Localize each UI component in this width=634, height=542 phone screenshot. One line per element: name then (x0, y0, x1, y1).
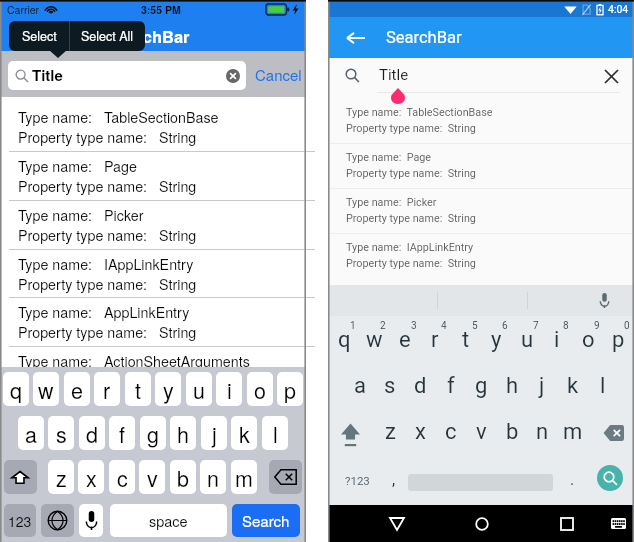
button[interactable]: h (497, 370, 527, 402)
button[interactable]: o (247, 372, 273, 406)
staticText: Type name: AppLinkEntry Property type na… (18, 302, 197, 342)
button[interactable]: d (79, 416, 105, 450)
staticText: e (71, 374, 83, 405)
button[interactable] (408, 462, 553, 500)
button[interactable]: , (380, 462, 408, 500)
button[interactable]: 9 (573, 323, 603, 355)
button[interactable]: y (155, 372, 181, 406)
button[interactable]: 123 (4, 504, 36, 537)
button[interactable]: Voice input (592, 285, 616, 316)
button[interactable]: Type name: Picker Property type name: St… (0, 200, 306, 249)
button[interactable]: 5 (451, 323, 481, 355)
button[interactable]: l (262, 416, 288, 450)
button[interactable]: f (436, 370, 466, 402)
button[interactable]: Type name: IAppLinkEntry Property type n… (0, 249, 306, 298)
button[interactable]: 4 (420, 323, 450, 355)
button[interactable]: v (139, 460, 165, 494)
staticText: t (135, 374, 141, 405)
button[interactable]: Recent apps (538, 505, 595, 542)
button[interactable]: j (201, 416, 227, 450)
staticText: x (86, 462, 97, 493)
button[interactable]: Select (9, 21, 69, 51)
staticText: Type name: Picker Property type name: St… (18, 205, 197, 245)
button[interactable]: h (170, 416, 196, 450)
button[interactable]: z (375, 416, 405, 448)
button[interactable]: 8 (542, 323, 572, 355)
staticText: Select All (81, 27, 134, 45)
button[interactable]: Select All (70, 21, 145, 51)
button[interactable]: 6 (481, 323, 511, 355)
button[interactable]: 7 (512, 323, 542, 355)
staticText: r (103, 374, 111, 405)
button[interactable]: g (140, 416, 166, 450)
button[interactable]: Type name: ActionSheetArguments Property… (0, 346, 306, 367)
button[interactable]: n (527, 416, 557, 448)
button[interactable]: Clear text (225, 68, 241, 84)
button[interactable]: Search (232, 504, 300, 537)
button[interactable]: Backspace (596, 416, 632, 456)
button[interactable]: u (186, 372, 212, 406)
staticText: h (177, 418, 189, 449)
button[interactable]: l (588, 370, 618, 402)
button[interactable]: Type name: TableSectionBase Property typ… (328, 98, 634, 143)
button[interactable]: Type name: IAppLinkEntry Property type n… (328, 233, 634, 278)
button[interactable]: Type name: Picker Property type name: St… (328, 188, 634, 233)
button[interactable]: k (558, 370, 588, 402)
button[interactable]: m (231, 460, 257, 494)
button[interactable]: n (200, 460, 226, 494)
button[interactable]: m (558, 416, 588, 448)
button[interactable]: Switch keyboard (596, 505, 634, 542)
button[interactable]: w (33, 372, 59, 406)
button[interactable]: Shift (332, 416, 368, 456)
button[interactable]: 2 (359, 323, 389, 355)
button[interactable]: x (405, 416, 435, 448)
button[interactable]: 3 (390, 323, 420, 355)
button[interactable]: v (466, 416, 496, 448)
button[interactable]: x (78, 460, 104, 494)
button[interactable]: c (436, 416, 466, 448)
staticText: m (235, 462, 253, 493)
button[interactable]: e (64, 372, 90, 406)
button[interactable]: Clear text (599, 64, 623, 88)
button[interactable]: Change keyboard (41, 504, 74, 537)
button[interactable]: Type name: AppLinkEntry Property type na… (0, 297, 306, 346)
button[interactable]: a (345, 370, 375, 402)
button[interactable]: s (375, 370, 405, 402)
button[interactable]: s (48, 416, 74, 450)
button[interactable]: Back (368, 505, 425, 542)
button[interactable]: Type name: Page Property type name: Stri… (328, 143, 634, 188)
button[interactable]: Search (588, 460, 632, 498)
button[interactable]: q (3, 372, 29, 406)
button[interactable]: a (18, 416, 44, 450)
staticText: n (536, 419, 549, 445)
button[interactable]: b (170, 460, 196, 494)
staticText: i (554, 327, 560, 353)
button[interactable]: Back (341, 23, 371, 53)
button[interactable]: Shift (4, 460, 37, 494)
button[interactable]: Type name: TableSectionBase Property typ… (0, 97, 306, 151)
button[interactable]: 1 (329, 323, 359, 355)
button[interactable]: d (405, 370, 435, 402)
button[interactable]: z (48, 460, 74, 494)
button[interactable]: k (231, 416, 257, 450)
button[interactable]: Cancel (252, 59, 305, 90)
button[interactable]: Backspace (269, 460, 302, 494)
button[interactable]: r (94, 372, 120, 406)
button[interactable]: b (497, 416, 527, 448)
button[interactable]: j (527, 370, 557, 402)
button[interactable]: f (109, 416, 135, 450)
staticText: o (254, 374, 266, 405)
button[interactable]: space (110, 504, 227, 537)
button[interactable]: ?123 (332, 462, 380, 500)
button[interactable]: Title (8, 61, 246, 90)
button[interactable]: Voice input (79, 504, 103, 537)
button[interactable]: Home (453, 505, 510, 542)
button[interactable]: c (109, 460, 135, 494)
button[interactable]: p (277, 372, 303, 406)
button[interactable]: i (216, 372, 242, 406)
button[interactable]: Type name: Page Property type name: Stri… (0, 151, 306, 200)
button[interactable]: 0 (603, 323, 633, 355)
button[interactable]: t (125, 372, 151, 406)
button[interactable]: . (558, 462, 586, 500)
button[interactable]: g (466, 370, 496, 402)
